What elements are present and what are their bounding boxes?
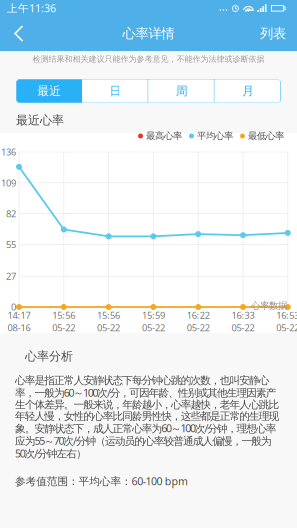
button[interactable]: 列表 bbox=[249, 16, 297, 51]
staticText: 16:53 bbox=[276, 309, 297, 321]
staticText: 心率是指正常人安静状态下每分钟心跳的次数，也叫安静心 bbox=[15, 374, 270, 387]
button[interactable]: 周 bbox=[148, 79, 215, 103]
staticText: 15:56 bbox=[97, 309, 120, 321]
staticText: 年轻人慢，女性的心率比同龄男性快，这些都是正常的生理现 bbox=[15, 410, 279, 423]
staticText: 检测结果和相关建议只能作为参考意见，不能作为法律或诊断依据 bbox=[32, 54, 264, 64]
button[interactable]: 日 bbox=[82, 79, 148, 103]
staticText: 82 bbox=[6, 207, 16, 220]
staticText: 16:22 bbox=[187, 309, 210, 321]
button[interactable]: 返回 bbox=[0, 16, 38, 51]
staticText: 参考值范围：平均心率：60-100 bpm bbox=[15, 474, 188, 488]
staticText: 05-22 bbox=[142, 321, 165, 334]
staticText: 05-22 bbox=[52, 321, 75, 334]
staticText: 05-22 bbox=[231, 321, 254, 334]
staticText: 最低心率 bbox=[248, 130, 284, 142]
staticText: 16:33 bbox=[231, 309, 254, 321]
staticText: 109 bbox=[1, 177, 16, 189]
staticText: 15:59 bbox=[142, 309, 165, 321]
staticText: 0 bbox=[11, 301, 16, 313]
staticText: 率，一般为60～100次/分，可因年龄、性别或其他生理因素产 bbox=[15, 385, 277, 400]
staticText: 列表 bbox=[260, 25, 286, 42]
staticText: 象。安静状态下，成人正常心率为60～100次/分钟，理想心率 bbox=[15, 421, 277, 435]
staticText: 生个体差异。一般来说，年龄越小，心率越快，老年人心跳比 bbox=[15, 398, 279, 411]
button[interactable]: 月 bbox=[215, 79, 281, 103]
staticText: 心率分析 bbox=[25, 349, 73, 364]
staticText: 15:56 bbox=[52, 309, 75, 321]
staticText: 月 bbox=[242, 84, 254, 98]
staticText: 55 bbox=[6, 238, 16, 250]
staticText: 心率详情 bbox=[122, 25, 174, 42]
staticText: 周 bbox=[176, 84, 188, 98]
staticText: 05-22 bbox=[187, 321, 210, 334]
staticText: 最近心率 bbox=[16, 113, 64, 128]
staticText: 05-22 bbox=[97, 321, 120, 334]
staticText: 应为55～70次/分钟（运动员的心率较普通成人偏慢，一般为 bbox=[15, 434, 272, 448]
staticText: 14:17 bbox=[7, 309, 30, 321]
staticText: 05-22 bbox=[276, 321, 297, 334]
staticText: 50次/分钟左右） bbox=[15, 446, 87, 460]
staticText: 上午11:36 bbox=[7, 1, 56, 15]
staticText: 日 bbox=[109, 84, 121, 98]
staticText: 最高心率 bbox=[146, 130, 182, 142]
button[interactable]: 最近 bbox=[16, 79, 82, 103]
staticText: 08-16 bbox=[7, 321, 30, 334]
staticText: 心率数据 bbox=[251, 300, 287, 311]
staticText: 27 bbox=[6, 270, 16, 282]
staticText: 平均心率 bbox=[197, 130, 233, 142]
staticText: 136 bbox=[1, 146, 16, 158]
staticText: 最近 bbox=[37, 84, 61, 98]
